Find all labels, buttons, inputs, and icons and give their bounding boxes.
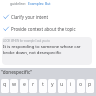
staticText: broke down, not desespecific [3, 50, 62, 56]
button[interactable]: i [67, 79, 75, 93]
button[interactable]: q [1, 79, 9, 93]
staticText: Clarify your intent [11, 14, 48, 20]
staticText: Examples: But [28, 1, 51, 6]
button[interactable]: o [77, 79, 85, 93]
button[interactable]: u [58, 79, 66, 93]
button[interactable]: e [20, 79, 28, 93]
button[interactable]: p [86, 79, 94, 93]
staticText: y [51, 80, 54, 87]
staticText: It is responding to someone whose car [3, 44, 81, 50]
staticText: o [79, 80, 83, 87]
button[interactable]: "donespecific" [0, 68, 96, 75]
staticText: t [42, 80, 44, 87]
button[interactable]: Clarify your intent [3, 14, 48, 20]
staticText: p [88, 80, 92, 87]
staticText: q [3, 80, 7, 87]
button[interactable]: w [10, 79, 18, 93]
staticText: r [32, 80, 35, 87]
staticText: "donespecific" [1, 69, 33, 75]
staticText: w [12, 80, 17, 87]
staticText: u [60, 80, 64, 87]
button[interactable]: r [29, 79, 37, 93]
staticText: Provide context about the topic [11, 26, 76, 32]
staticText: LOOK WHEN for example I ask you to [3, 39, 50, 43]
staticText: guideline: [10, 1, 26, 6]
staticText: i [70, 80, 72, 87]
button[interactable]: y [48, 79, 56, 93]
staticText: e [23, 80, 26, 87]
button[interactable]: LOOK WHEN for example I ask you to [2, 37, 92, 65]
button[interactable]: Provide context about the topic [3, 26, 76, 32]
button[interactable]: t [39, 79, 47, 93]
